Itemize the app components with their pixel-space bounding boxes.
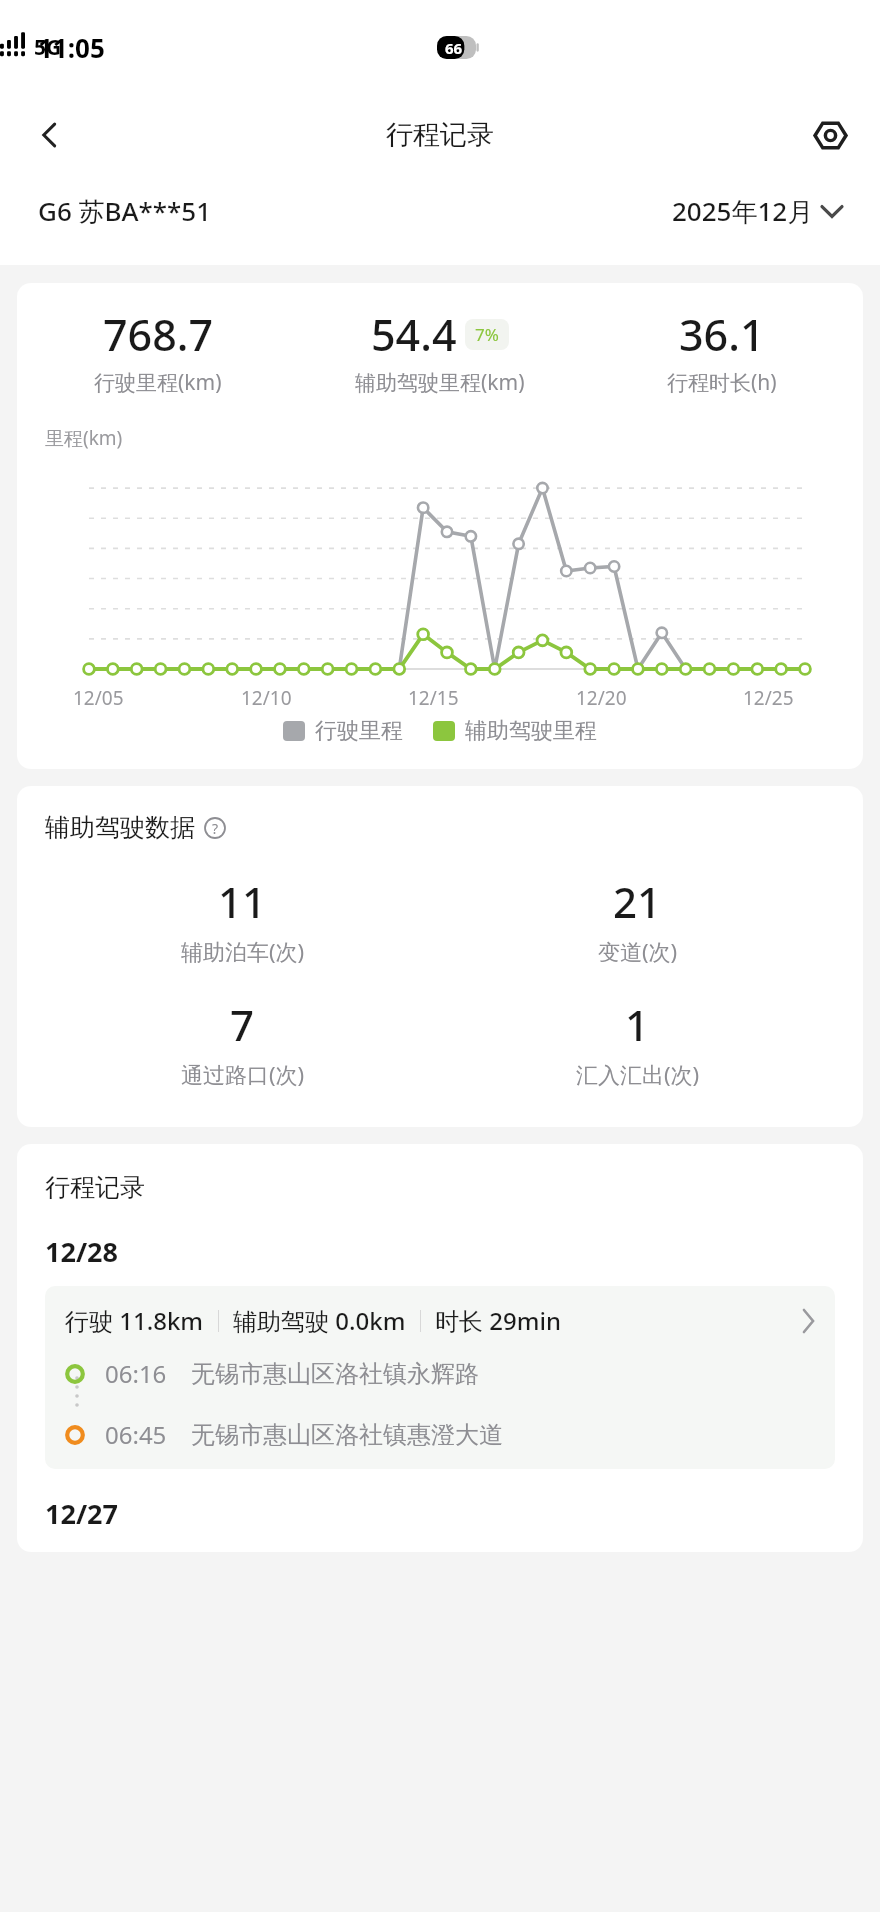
- staticText: 1: [625, 996, 650, 1053]
- staticText: 7%: [475, 323, 499, 346]
- button[interactable]: 36.1: [581, 305, 863, 397]
- staticText: 行驶里程(km): [94, 368, 222, 397]
- button[interactable]: Help: [202, 815, 228, 841]
- staticText: 11: [218, 873, 267, 930]
- button[interactable]: 21: [440, 873, 835, 966]
- staticText: ?: [212, 819, 219, 838]
- staticText: 12/10: [241, 685, 321, 711]
- button[interactable]: 7: [45, 996, 440, 1089]
- staticText: 辅助驾驶 0.0km: [233, 1304, 406, 1337]
- staticText: 12/27: [45, 1495, 118, 1532]
- staticText: 行程时长(h): [667, 368, 777, 397]
- staticText: 12/28: [45, 1233, 118, 1270]
- staticText: 辅助驾驶里程(km): [355, 368, 525, 397]
- staticText: 无锡市惠山区洛社镇永辉路: [191, 1359, 479, 1389]
- staticText: 行程记录: [45, 1172, 145, 1203]
- button[interactable]: 行驶 11.8km: [45, 1286, 835, 1469]
- button[interactable]: Settings: [802, 107, 858, 163]
- staticText: 36.1: [679, 305, 765, 364]
- staticText: 54.4: [371, 305, 457, 364]
- staticText: 06:45: [105, 1418, 167, 1451]
- staticText: 行驶 11.8km: [65, 1304, 204, 1337]
- button[interactable]: 54.4: [299, 305, 581, 397]
- staticText: 辅助驾驶数据: [45, 812, 195, 843]
- button[interactable]: 1: [440, 996, 835, 1089]
- staticText: 06:16: [105, 1357, 167, 1390]
- staticText: 行驶里程: [315, 717, 403, 745]
- staticText: 12/15: [408, 685, 488, 711]
- staticText: 时长 29min: [435, 1304, 561, 1337]
- staticText: 768.7: [103, 305, 214, 364]
- staticText: 2025年12月: [672, 193, 814, 229]
- staticText: 66: [445, 38, 463, 58]
- button[interactable]: Back: [22, 107, 78, 163]
- staticText: 12/25: [743, 685, 823, 711]
- button[interactable]: 768.7: [17, 305, 299, 397]
- staticText: 21: [613, 873, 662, 930]
- staticText: 变道(次): [598, 936, 678, 966]
- staticText: G6 苏BA***51: [38, 193, 212, 229]
- button[interactable]: 2025年12月: [672, 193, 842, 229]
- staticText: 汇入汇出(次): [576, 1059, 700, 1089]
- staticText: 无锡市惠山区洛社镇惠澄大道: [191, 1420, 503, 1450]
- staticText: 12/05: [73, 685, 153, 711]
- staticText: 里程(km): [45, 425, 123, 451]
- staticText: 行程记录: [386, 118, 494, 152]
- staticText: 12/20: [576, 685, 656, 711]
- staticText: 7: [230, 996, 255, 1053]
- staticText: 辅助泊车(次): [181, 936, 305, 966]
- staticText: 5G: [34, 33, 62, 62]
- button[interactable]: 11: [45, 873, 440, 966]
- staticText: 通过路口(次): [181, 1059, 305, 1089]
- staticText: 辅助驾驶里程: [465, 717, 597, 745]
- staticText: 11:05: [38, 30, 105, 65]
